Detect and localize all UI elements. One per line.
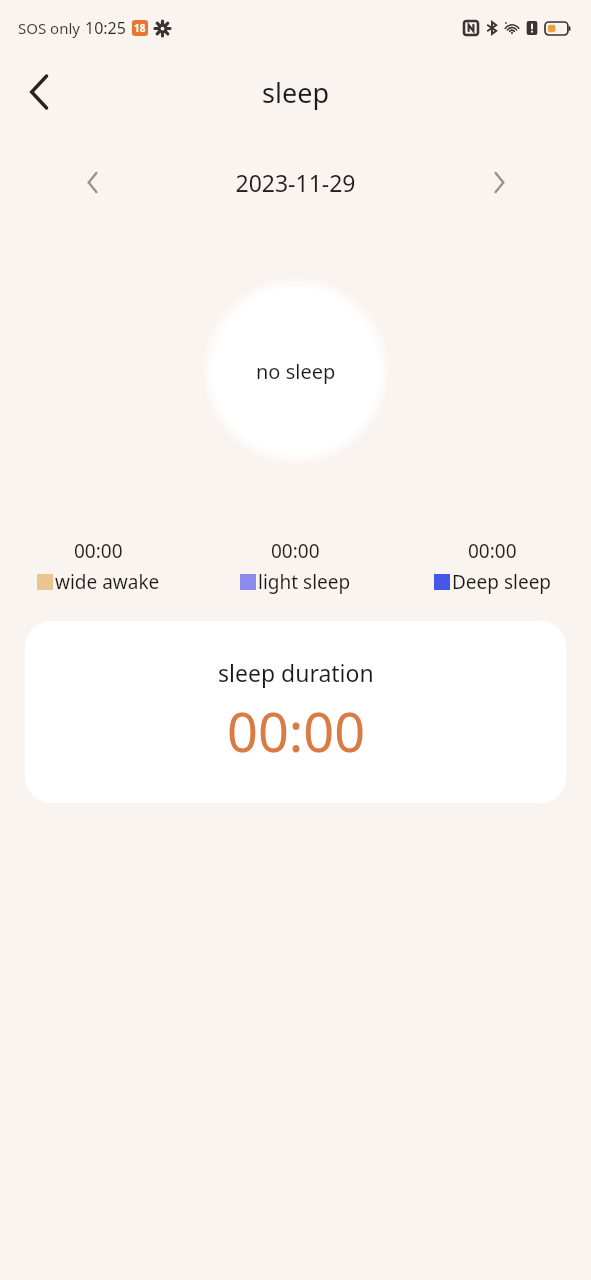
staticText: 00:00 [468, 538, 517, 564]
staticText: 00:00 [74, 538, 123, 564]
staticText: 00:00 [271, 538, 320, 564]
staticText: 2023-11-29 [235, 167, 356, 198]
button[interactable]: Back [14, 66, 66, 118]
button[interactable]: 00:00 [0, 536, 197, 597]
staticText: Deep sleep [452, 569, 552, 595]
staticText: sleep [262, 74, 329, 111]
button[interactable]: 00:00 [197, 536, 394, 597]
staticText: 00:00 [227, 694, 366, 768]
staticText: no sleep [256, 358, 336, 385]
staticText: SOS only [18, 18, 80, 38]
staticText: wide awake [55, 569, 160, 595]
button[interactable]: 00:00 [394, 536, 591, 597]
staticText: 10:25 [85, 17, 126, 39]
staticText: 18 [134, 21, 146, 35]
button[interactable]: sleep duration [25, 621, 566, 803]
staticText: light sleep [258, 569, 351, 595]
button[interactable]: Previous day [70, 160, 114, 204]
staticText: sleep duration [218, 657, 374, 688]
button[interactable]: Next day [477, 160, 521, 204]
